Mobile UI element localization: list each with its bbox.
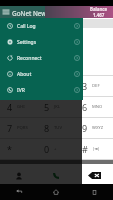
button[interactable]: 2 <box>37 76 75 96</box>
button[interactable]: Recent apps <box>75 184 113 200</box>
staticText: GoNet New <box>12 9 47 18</box>
staticText: MNO <box>92 104 103 110</box>
button[interactable]: 1 <box>0 76 37 96</box>
staticText: 0 <box>44 143 50 155</box>
button[interactable]: Reconnect <box>0 50 83 66</box>
button[interactable]: 9 <box>75 118 113 138</box>
staticText: * <box>7 143 12 155</box>
staticText: 4 <box>7 101 13 113</box>
staticText: 1.467 <box>93 12 105 18</box>
staticText: WXYZ <box>92 125 104 131</box>
button[interactable]: 3 <box>75 76 113 96</box>
button[interactable]: 6 <box>75 97 113 117</box>
button[interactable]: Contacts <box>0 164 37 187</box>
button[interactable]: 8 <box>37 118 75 138</box>
staticText: 7 <box>7 122 13 134</box>
staticText: JKL <box>54 104 60 110</box>
staticText: 8 <box>44 122 50 134</box>
staticText: # <box>82 143 88 155</box>
staticText: Balance <box>90 6 108 12</box>
staticText: 6 <box>82 101 88 113</box>
button[interactable]: 0 <box>37 139 75 159</box>
staticText: PQRS <box>17 125 28 131</box>
button[interactable]: Home <box>37 184 75 200</box>
staticText: 5 <box>44 101 50 113</box>
button[interactable]: Settings <box>0 34 83 50</box>
staticText: TUV <box>54 125 62 131</box>
staticText: IVR <box>17 87 25 94</box>
staticText: Reconnect <box>17 55 42 62</box>
button[interactable]: 7 <box>0 118 37 138</box>
button[interactable]: Call <box>37 164 75 187</box>
staticText: 9 <box>82 122 88 134</box>
staticText: About <box>17 71 32 78</box>
button[interactable]: Back <box>0 184 37 200</box>
staticText: Settings <box>17 39 37 46</box>
button[interactable]: Balance <box>45 6 113 18</box>
button[interactable]: About <box>0 66 83 82</box>
staticText: DEF <box>92 83 100 89</box>
button[interactable]: 5 <box>37 97 75 117</box>
button[interactable]: # <box>75 139 113 159</box>
staticText: |◄| <box>92 146 100 152</box>
staticText: GHI <box>17 104 25 110</box>
staticText: Call Log <box>17 23 36 30</box>
button[interactable]: 4 <box>0 97 37 117</box>
button[interactable]: Open navigation drawer <box>0 6 45 18</box>
button[interactable]: Call Log <box>0 18 83 34</box>
button[interactable]: IVR <box>0 82 83 98</box>
staticText: + <box>54 146 57 152</box>
staticText: 1 <box>7 80 13 92</box>
button[interactable]: Backspace <box>75 164 113 187</box>
staticText: 3 <box>82 80 88 92</box>
